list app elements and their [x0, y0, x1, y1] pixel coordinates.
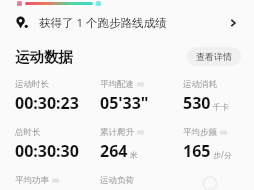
staticText: 米: [130, 150, 138, 160]
staticText: 运动消耗: [183, 79, 217, 90]
staticText: 264: [100, 140, 128, 161]
other: Route location: [15, 16, 29, 30]
staticText: 查看详情: [196, 51, 232, 62]
button[interactable]: 查看详情: [187, 47, 241, 66]
staticText: 运动负荷: [100, 175, 134, 186]
staticText: 步/分: [213, 149, 232, 160]
staticText: 千卡: [213, 102, 229, 112]
staticText: 获得了 1 个跑步路线成绩: [39, 15, 167, 31]
staticText: 运动时长: [15, 79, 49, 90]
staticText: 累计爬升: [100, 127, 134, 138]
staticText: 00:30:30: [15, 140, 79, 161]
staticText: 165: [183, 140, 211, 161]
button[interactable]: Route location: [0, 9, 254, 37]
staticText: 530: [183, 92, 211, 113]
staticText: 运动数据: [15, 48, 73, 66]
staticText: 05'33": [100, 92, 149, 113]
staticText: 平均功率: [15, 175, 49, 186]
staticText: 总时长: [15, 127, 41, 138]
staticText: 平均配速: [100, 79, 134, 90]
staticText: 00:30:23: [15, 92, 79, 113]
staticText: 平均步频: [183, 127, 217, 138]
other: View route detail: [227, 17, 239, 29]
